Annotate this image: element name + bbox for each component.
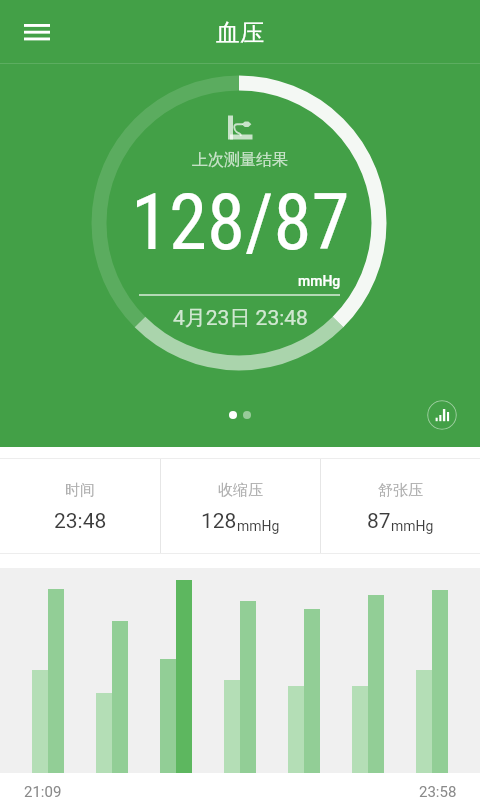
staticText: 23:48 [54, 509, 107, 534]
staticText: 23:58 [419, 783, 457, 800]
button[interactable]: View chart [427, 400, 457, 430]
staticText: mmHg [391, 518, 434, 534]
staticText: 上次测量结果 [192, 150, 288, 170]
button[interactable]: 时间 [0, 459, 160, 553]
staticText: 4月23日 23:48 [173, 305, 308, 331]
staticText: 时间 [65, 481, 95, 500]
staticText: 舒张压 [378, 481, 423, 500]
staticText: mmHg [298, 273, 341, 289]
button[interactable]: 收缩压 [161, 459, 320, 553]
staticText: mmHg [237, 518, 280, 534]
button[interactable]: 舒张压 [321, 459, 480, 553]
staticText: 128 [201, 509, 237, 534]
staticText: 87 [367, 509, 391, 534]
button[interactable] [0, 568, 480, 773]
staticText: 21:09 [24, 783, 62, 800]
staticText: 血压 [216, 18, 264, 48]
staticText: 128/87 [131, 178, 350, 268]
button[interactable]: Menu [9, 4, 65, 60]
staticText: 收缩压 [218, 481, 263, 500]
